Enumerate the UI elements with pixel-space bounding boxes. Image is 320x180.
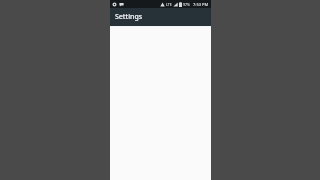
staticText: 7:53 PM — [193, 2, 209, 7]
button[interactable]: Settings — [110, 8, 211, 26]
staticText: LTE — [166, 2, 172, 7]
staticText: Settings — [115, 12, 143, 22]
staticText: 97% — [183, 2, 190, 7]
